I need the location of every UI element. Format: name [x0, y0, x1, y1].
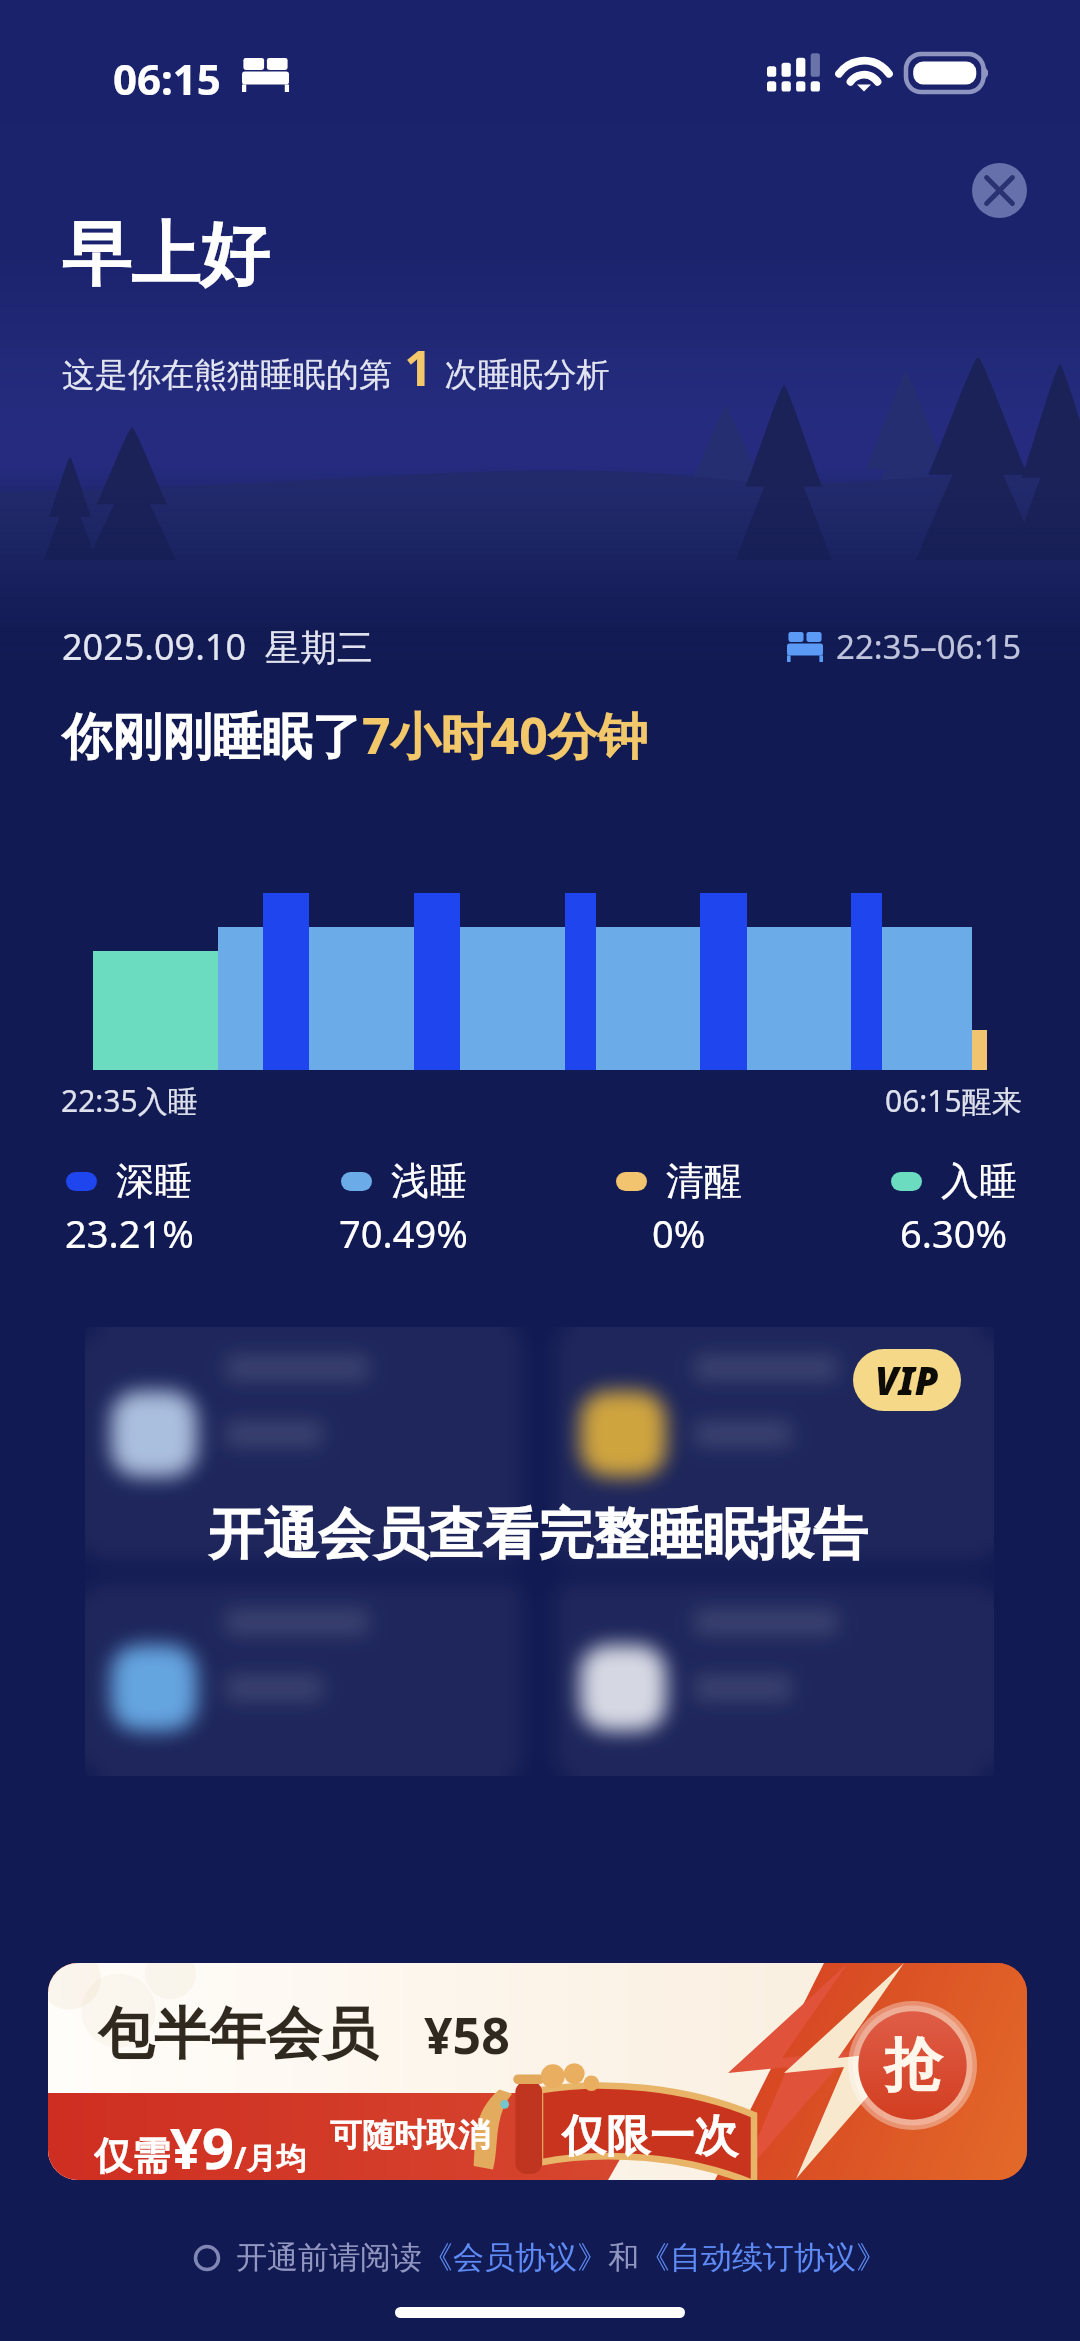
- staticText: 22:35–06:15: [836, 624, 1022, 669]
- staticText: 包半年会员: [98, 1999, 378, 2070]
- staticText: 入睡: [941, 1157, 1017, 1205]
- staticText: 23.21%: [65, 1207, 194, 1259]
- button[interactable]: VIP: [853, 1349, 961, 1411]
- staticText: 深睡: [116, 1157, 192, 1205]
- staticText: 你刚刚睡眠了7小时40分钟: [62, 701, 648, 769]
- staticText: 仅限一次: [562, 2109, 738, 2164]
- staticText: 仅需¥9/月均: [94, 2109, 307, 2180]
- staticText: 开通前请阅读《会员协议》和《自动续订协议》: [236, 2238, 887, 2277]
- button[interactable]: 包半年会员: [48, 1963, 1027, 2180]
- staticText: 开通会员查看完整睡眠报告: [208, 1500, 868, 1569]
- staticText: 22:35入睡: [61, 1080, 198, 1121]
- staticText: 这是你在熊猫睡眠的第 1 次睡眠分析: [62, 335, 610, 400]
- staticText: ¥58: [424, 2001, 510, 2069]
- staticText: 0%: [652, 1207, 706, 1259]
- staticText: 2025.09.10 星期三: [62, 622, 373, 671]
- staticText: 6.30%: [900, 1207, 1007, 1259]
- staticText: VIP: [875, 1354, 939, 1406]
- staticText: 清醒: [666, 1157, 742, 1205]
- staticText: 06:15: [113, 50, 221, 107]
- staticText: 抢: [884, 2029, 942, 2102]
- staticText: 早上好: [62, 212, 269, 299]
- staticText: 06:15醒来: [885, 1080, 1022, 1121]
- staticText: 70.49%: [339, 1207, 468, 1259]
- button[interactable]: Close: [972, 163, 1027, 218]
- staticText: 浅睡: [391, 1157, 467, 1205]
- staticText: 可随时取消: [330, 2115, 490, 2155]
